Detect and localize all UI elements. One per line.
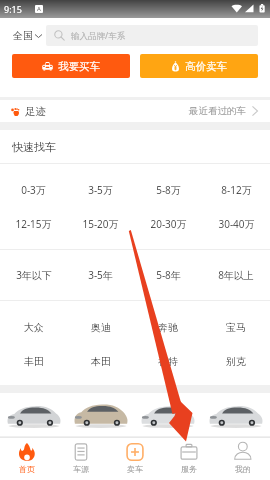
button[interactable]: 别克: [202, 344, 270, 378]
button[interactable]: 足迹: [0, 100, 270, 122]
button[interactable]: 20-30万: [134, 207, 202, 241]
button[interactable]: 奥迪: [67, 310, 134, 344]
staticText: 8-12万: [221, 183, 252, 197]
button[interactable]: 3-5万: [67, 173, 134, 207]
staticText: 5-8万: [156, 183, 181, 197]
button[interactable]: 5-8万: [134, 173, 202, 207]
button[interactable]: 本田: [67, 344, 134, 378]
button[interactable]: 服务: [162, 438, 216, 480]
button[interactable]: 全国: [13, 29, 46, 42]
button[interactable]: 卖车: [108, 438, 162, 480]
button[interactable]: [67, 393, 134, 436]
button[interactable]: 15-20万: [67, 207, 134, 241]
staticText: A: [37, 5, 41, 13]
button[interactable]: 0-3万: [0, 173, 67, 207]
staticText: 宝马: [226, 321, 246, 334]
staticText: 首页: [19, 464, 35, 474]
button[interactable]: 我的: [216, 438, 270, 480]
staticText: 5-8年: [156, 268, 181, 282]
staticText: 全国: [13, 29, 33, 42]
button[interactable]: 12-15万: [0, 207, 67, 241]
staticText: 车源: [73, 464, 89, 474]
button[interactable]: 3年以下: [0, 258, 67, 292]
staticText: 我的: [235, 464, 251, 474]
button[interactable]: 3-5年: [67, 258, 134, 292]
staticText: 3-5万: [88, 183, 113, 197]
staticText: 丰田: [24, 355, 44, 368]
staticText: 大众: [24, 321, 44, 334]
staticText: 别克: [226, 355, 246, 368]
staticText: 快速找车: [12, 140, 56, 154]
staticText: 3年以下: [16, 268, 52, 282]
staticText: 本田: [91, 355, 111, 368]
button[interactable]: 8年以上: [202, 258, 270, 292]
staticText: 我要买车: [58, 60, 100, 73]
button[interactable]: [134, 393, 202, 436]
button[interactable]: 输入品牌/车系: [46, 25, 258, 46]
staticText: 3-5年: [88, 268, 113, 282]
staticText: 卖车: [127, 464, 143, 474]
button[interactable]: [0, 393, 67, 436]
button[interactable]: 首页: [0, 438, 54, 480]
button[interactable]: 大众: [0, 310, 67, 344]
button[interactable]: 车源: [54, 438, 108, 480]
staticText: 9:15: [4, 3, 22, 15]
staticText: 奥迪: [91, 321, 111, 334]
staticText: 0-3万: [21, 183, 46, 197]
button[interactable]: 高价卖车: [140, 54, 258, 78]
button[interactable]: 5-8年: [134, 258, 202, 292]
staticText: 福特: [158, 355, 178, 368]
staticText: 15-20万: [82, 217, 119, 231]
button[interactable]: 奔驰: [134, 310, 202, 344]
button[interactable]: [202, 393, 270, 436]
button[interactable]: 福特: [134, 344, 202, 378]
button[interactable]: 8-12万: [202, 173, 270, 207]
staticText: 足迹: [25, 105, 46, 118]
staticText: 输入品牌/车系: [71, 30, 126, 42]
button[interactable]: 我要买车: [12, 54, 130, 78]
staticText: 12-15万: [15, 217, 52, 231]
staticText: 20-30万: [150, 217, 187, 231]
button[interactable]: 30-40万: [202, 207, 270, 241]
staticText: 最近看过的车: [189, 105, 246, 117]
button[interactable]: 丰田: [0, 344, 67, 378]
staticText: 高价卖车: [185, 60, 227, 73]
button[interactable]: 宝马: [202, 310, 270, 344]
staticText: 8年以上: [218, 268, 254, 282]
staticText: 服务: [181, 464, 197, 474]
staticText: 30-40万: [218, 217, 255, 231]
staticText: 奔驰: [158, 321, 178, 334]
